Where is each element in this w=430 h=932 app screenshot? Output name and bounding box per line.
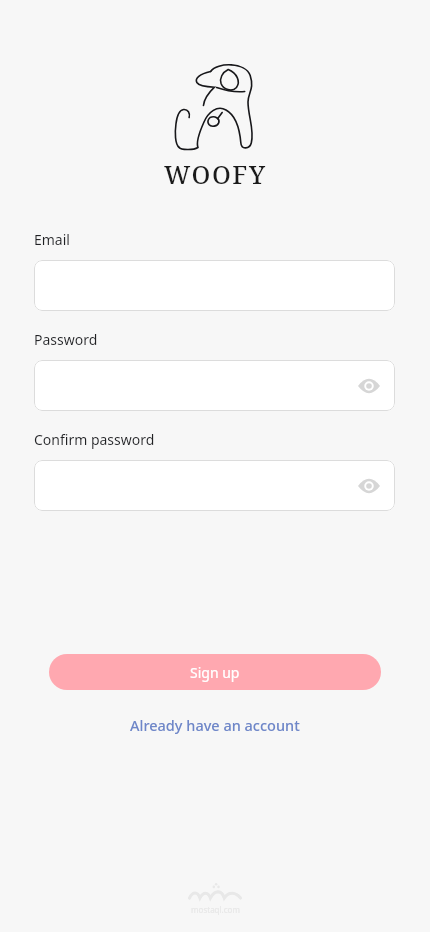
button[interactable]: Show Password — [355, 372, 383, 400]
button[interactable]: Show Password — [34, 360, 395, 411]
staticText: Already have an account — [130, 715, 300, 735]
button[interactable]: Show Confirm password — [34, 460, 395, 511]
staticText: Password — [34, 330, 98, 349]
staticText: mostaql.com — [191, 904, 240, 915]
staticText: Confirm password — [34, 430, 155, 449]
button[interactable] — [34, 260, 395, 311]
staticText: Email — [34, 230, 70, 249]
button[interactable]: Sign up — [49, 654, 381, 690]
button[interactable]: Show Confirm password — [355, 472, 383, 500]
staticText: Sign up — [190, 663, 240, 682]
button[interactable]: Already have an account — [122, 711, 308, 739]
staticText: WOOFY — [164, 157, 267, 191]
